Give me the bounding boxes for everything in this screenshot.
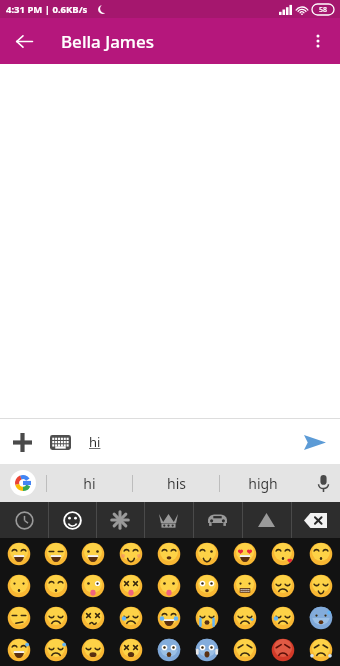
button[interactable]: Emoji (37, 634, 74, 666)
button[interactable]: Emoji (226, 634, 264, 666)
button[interactable]: Emoji (37, 602, 74, 634)
button[interactable]: Emoji (112, 634, 150, 666)
button[interactable]: Emoji (264, 634, 302, 666)
button[interactable]: Smileys (48, 502, 96, 538)
button[interactable]: Emoji (37, 570, 74, 602)
button[interactable]: high (220, 464, 306, 502)
button[interactable]: Emoji (112, 602, 150, 634)
staticText: his (167, 474, 186, 493)
button[interactable]: Emoji (226, 602, 264, 634)
staticText: Bella James (61, 30, 154, 53)
button[interactable]: Emoji (0, 602, 37, 634)
button[interactable]: Emoji (302, 602, 340, 634)
button[interactable]: Emoji (150, 634, 188, 666)
button[interactable]: Keyboard (44, 426, 76, 458)
button[interactable]: Emoji (188, 570, 226, 602)
button[interactable]: Emoji (264, 602, 302, 634)
button[interactable]: Voice input (306, 464, 340, 502)
button[interactable]: Emoji (74, 538, 112, 570)
button[interactable]: hi (47, 464, 132, 502)
button[interactable]: Emoji (188, 538, 226, 570)
button[interactable]: Emoji (74, 602, 112, 634)
button[interactable]: Emoji (188, 634, 226, 666)
button[interactable]: Emoji (0, 634, 37, 666)
button[interactable]: Emoji (150, 538, 188, 570)
staticText: 58 (319, 5, 328, 15)
button[interactable]: Emoji (150, 570, 188, 602)
staticText: hi (89, 433, 101, 451)
button[interactable]: Emoji (302, 538, 340, 570)
button[interactable]: Back (8, 25, 40, 57)
button[interactable]: Google (0, 464, 46, 502)
button[interactable]: Food (144, 502, 193, 538)
button[interactable]: Send (298, 425, 332, 459)
button[interactable]: Nature (96, 502, 144, 538)
button[interactable]: Emoji (37, 538, 74, 570)
button[interactable]: Emoji (112, 538, 150, 570)
button[interactable]: Emoji (74, 634, 112, 666)
button[interactable]: Add attachment (6, 426, 38, 458)
button[interactable]: Emoji (112, 570, 150, 602)
button[interactable]: his (133, 464, 219, 502)
staticText: 4:31 PM | 0.6KB/s (6, 3, 88, 16)
button[interactable]: Emoji (0, 538, 37, 570)
button[interactable]: Recent (0, 502, 48, 538)
button[interactable]: Emoji (302, 570, 340, 602)
button[interactable]: Emoji (74, 570, 112, 602)
button[interactable]: Backspace (291, 502, 340, 538)
button[interactable]: Emoji (188, 602, 226, 634)
button[interactable]: Emoji (302, 634, 340, 666)
button[interactable]: More options (302, 25, 334, 57)
staticText: hi (83, 474, 96, 493)
button[interactable]: Emoji (150, 602, 188, 634)
button[interactable]: Emoji (0, 570, 37, 602)
button[interactable]: Emoji (226, 538, 264, 570)
button[interactable]: Emoji (226, 570, 264, 602)
button[interactable]: Travel (193, 502, 242, 538)
button[interactable]: Emoji (264, 570, 302, 602)
button[interactable]: Emoji (264, 538, 302, 570)
staticText: high (248, 474, 278, 493)
button[interactable]: Objects (242, 502, 291, 538)
